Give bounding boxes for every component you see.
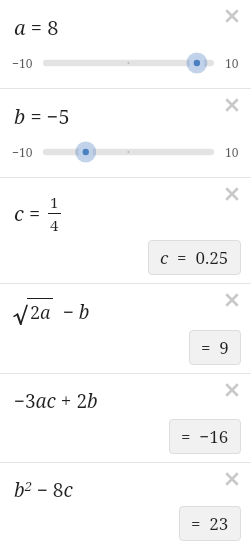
staticText: b = −5 [14, 103, 70, 130]
staticText: − b [53, 299, 90, 325]
staticText: = 9 [201, 336, 229, 359]
staticText: a = 8 [14, 14, 59, 41]
button[interactable]: Delete row [217, 375, 247, 405]
button[interactable]: Slider [41, 52, 216, 74]
staticText: 10 [225, 55, 239, 71]
button[interactable]: = 23 [179, 506, 241, 541]
staticText: = 23 [191, 512, 229, 535]
button[interactable]: = 9 [189, 330, 241, 365]
staticText: 10 [225, 144, 239, 160]
button[interactable]: Delete row [217, 1, 247, 31]
button[interactable]: Delete row [217, 464, 247, 494]
button[interactable]: = −16 [169, 419, 241, 454]
staticText: −3ac + 2b [14, 388, 98, 414]
button[interactable]: Delete row [217, 179, 247, 209]
button[interactable]: Slider [41, 141, 216, 163]
button[interactable]: c = 0.25 [148, 240, 241, 275]
staticText: = −16 [181, 425, 229, 448]
button[interactable]: Delete row [217, 285, 247, 315]
staticText: c = 0.25 [160, 246, 229, 269]
staticText: 4 [50, 215, 59, 235]
staticText: −10 [12, 55, 33, 71]
staticText: 1 [50, 192, 59, 212]
staticText: b2 − 8c [14, 477, 73, 503]
button[interactable]: Delete row [217, 90, 247, 120]
staticText: 2a [30, 300, 51, 325]
staticText: c = [14, 200, 46, 227]
staticText: −10 [12, 144, 33, 160]
